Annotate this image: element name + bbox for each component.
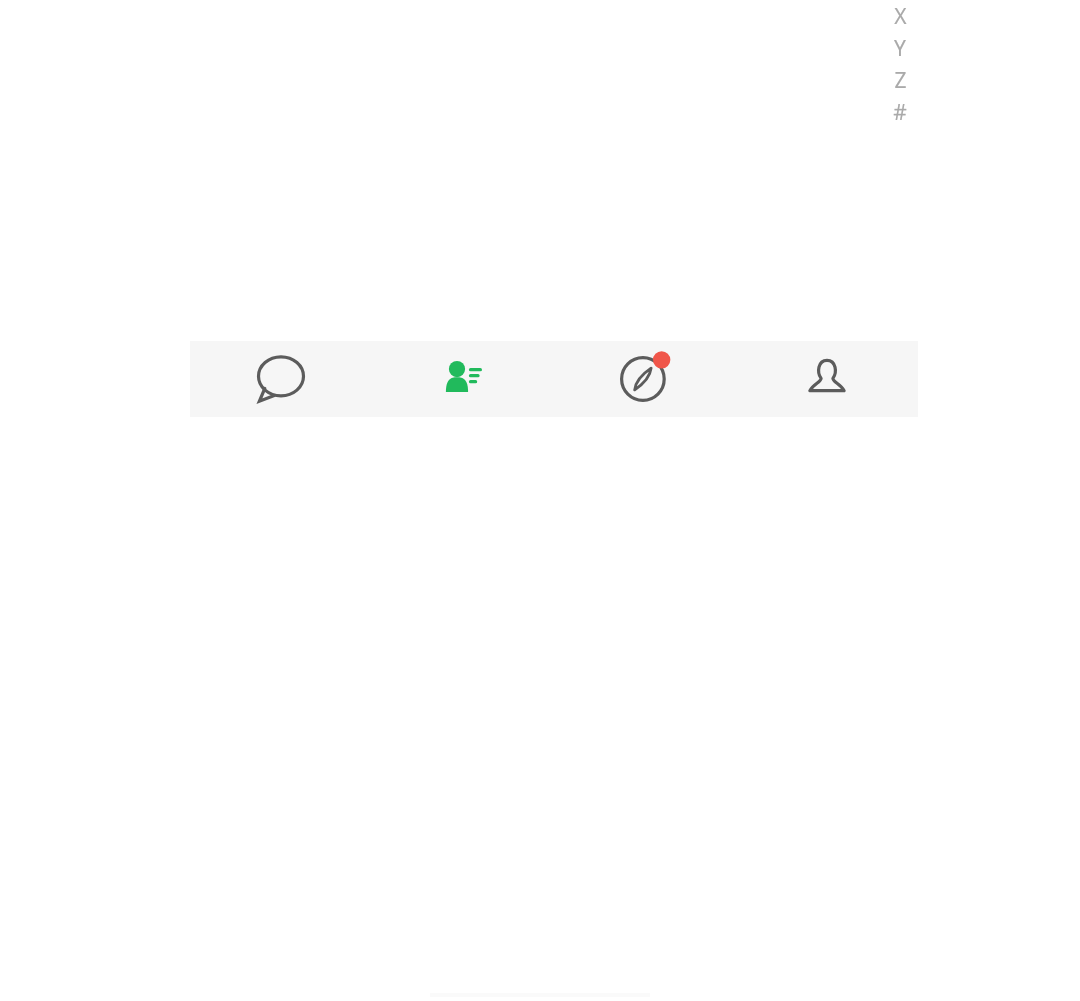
button[interactable]: X <box>886 0 914 32</box>
button[interactable]: # <box>886 96 914 128</box>
button[interactable]: Discover <box>554 341 736 417</box>
button[interactable]: Me <box>736 341 918 417</box>
staticText: Y <box>894 34 906 63</box>
staticText: # <box>893 98 907 127</box>
staticText: Z <box>894 66 907 95</box>
button[interactable]: Chats <box>190 341 372 417</box>
button[interactable]: Y <box>886 32 914 64</box>
button[interactable]: Contacts <box>372 341 554 417</box>
staticText: X <box>894 2 907 31</box>
button[interactable]: Z <box>886 64 914 96</box>
